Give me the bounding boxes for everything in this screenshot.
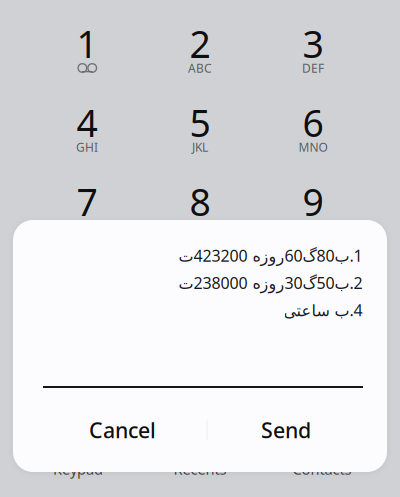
button[interactable]: Keypad (17, 462, 139, 476)
button[interactable]: 9 (256, 168, 369, 247)
staticText: 5 (189, 98, 210, 147)
button[interactable]: Contacts (261, 462, 383, 476)
staticText: 7 (76, 177, 97, 226)
staticText: 8 (189, 177, 210, 226)
button[interactable]: 7 (30, 168, 143, 247)
staticText: MNO (298, 139, 327, 155)
button[interactable]: 4 (30, 89, 143, 168)
staticText: 6 (302, 98, 323, 147)
staticText: Send (261, 416, 311, 444)
button[interactable]: 8 (143, 168, 256, 247)
staticText: Keypad (53, 459, 103, 479)
staticText: ABC (188, 60, 212, 76)
staticText: 1.ب80گ60روزه 423200ت (178, 245, 362, 266)
button[interactable]: 5 (143, 89, 256, 168)
button[interactable]: Send (200, 416, 387, 444)
staticText: PQRS (72, 218, 102, 234)
staticText: DEF (302, 60, 324, 76)
staticText: 1 (76, 19, 97, 68)
staticText: 4 (76, 98, 97, 147)
staticText: 2.ب50گ30روزه 238000ت (178, 272, 362, 293)
button[interactable]: 3 (256, 10, 369, 89)
button[interactable]: Recents (139, 462, 261, 476)
staticText: WXYZ (297, 218, 329, 234)
staticText: 4.ب ساعتی (283, 299, 362, 321)
staticText: 2 (189, 19, 210, 68)
button[interactable]: 6 (256, 89, 369, 168)
staticText: JKL (192, 139, 208, 155)
staticText: Recents (173, 459, 226, 479)
staticText: 9 (302, 177, 323, 226)
staticText: Cancel (89, 416, 156, 444)
staticText: TUV (188, 218, 211, 234)
staticText: 3 (302, 19, 323, 68)
button[interactable]: 1 (30, 10, 143, 89)
button[interactable]: 2 (143, 10, 256, 89)
staticText: GHI (76, 139, 98, 155)
staticText: Contacts (292, 459, 351, 479)
button[interactable]: Cancel (13, 416, 200, 444)
